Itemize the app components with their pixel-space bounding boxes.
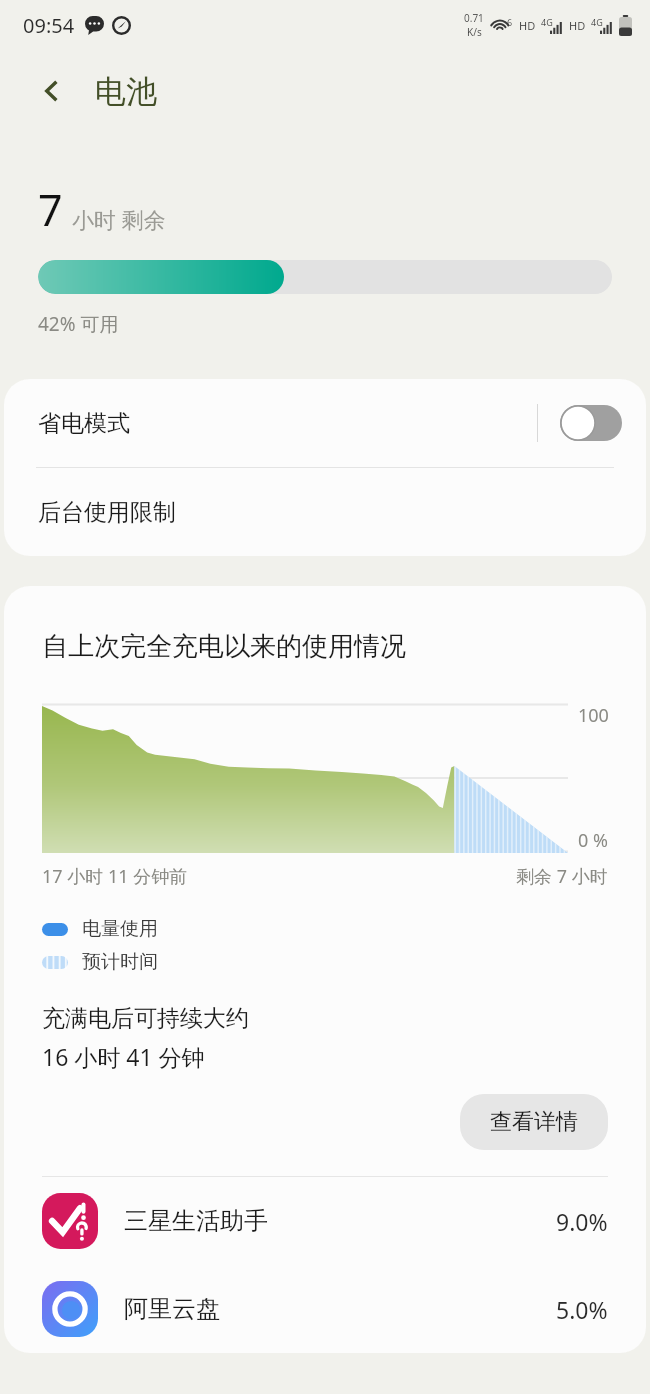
staticText: 电池: [95, 72, 157, 111]
staticText: 三星生活助手: [124, 1206, 268, 1236]
staticText: 预计时间: [82, 950, 158, 974]
staticText: 42% 可用: [38, 311, 119, 337]
button[interactable]: 三星生活助手: [4, 1177, 646, 1265]
staticText: 充满电后可持续大约: [42, 1004, 249, 1033]
button[interactable]: Power saving mode toggle: [560, 405, 622, 441]
staticText: 阿里云盘: [124, 1294, 220, 1324]
button[interactable]: 省电模式: [4, 379, 646, 467]
staticText: 0.71: [464, 11, 484, 25]
staticText: 0 %: [578, 828, 608, 853]
button[interactable]: 查看详情: [460, 1094, 608, 1150]
staticText: 17 小时 11 分钟前: [42, 864, 188, 889]
staticText: 后台使用限制: [38, 498, 176, 527]
staticText: 电量使用: [82, 917, 158, 941]
staticText: 4G: [541, 16, 553, 28]
staticText: HD: [569, 18, 586, 33]
staticText: 剩余 7 小时: [516, 864, 608, 889]
staticText: 9.0%: [556, 1206, 608, 1237]
staticText: 省电模式: [38, 409, 130, 438]
staticText: 16 小时 41 分钟: [42, 1041, 205, 1072]
button[interactable]: 后台使用限制: [4, 468, 646, 556]
staticText: HD: [519, 18, 536, 33]
staticText: 查看详情: [490, 1108, 578, 1136]
staticText: 自上次完全充电以来的使用情况: [42, 630, 406, 663]
button[interactable]: 阿里云盘: [4, 1265, 646, 1353]
staticText: 09:54: [23, 12, 75, 39]
staticText: 6: [507, 16, 513, 28]
staticText: 4G: [591, 16, 603, 28]
staticText: 5.0%: [556, 1294, 608, 1325]
staticText: 小时 剩余: [72, 204, 166, 234]
staticText: K/s: [467, 25, 482, 39]
button[interactable]: Back: [30, 69, 74, 113]
staticText: 7: [38, 180, 63, 239]
staticText: 100: [578, 703, 609, 728]
